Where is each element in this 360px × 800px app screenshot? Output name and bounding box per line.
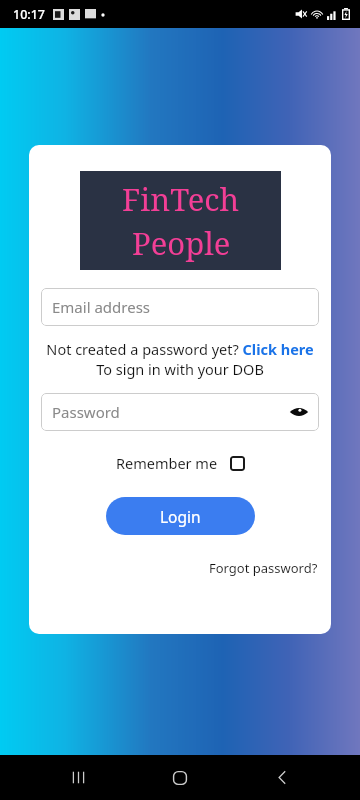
staticText: Not created a password yet? Click here T…	[37, 339, 323, 380]
staticText: FinTech	[122, 178, 240, 220]
staticText: Email address	[52, 297, 151, 317]
staticText: Login	[160, 506, 201, 527]
button[interactable]: Remember me	[112, 449, 249, 477]
staticText: Forgot password?	[209, 559, 318, 577]
button[interactable]: Not created a password yet? Click here T…	[37, 339, 323, 380]
button[interactable]: Home	[156, 755, 204, 800]
staticText: People	[132, 222, 231, 264]
button[interactable]: Back	[258, 755, 306, 800]
staticText: 10:17	[13, 6, 46, 23]
button[interactable]: Recents	[54, 755, 102, 800]
staticText: Remember me	[116, 453, 218, 473]
staticText: FinTech	[122, 178, 240, 220]
button[interactable]: Login	[106, 497, 255, 535]
button[interactable]: Email address	[41, 288, 319, 326]
button[interactable]: Show password	[288, 401, 310, 423]
button[interactable]: Password	[41, 393, 319, 431]
staticText: People	[132, 222, 231, 264]
staticText: Password	[52, 402, 120, 422]
button[interactable]: Forgot password?	[207, 557, 320, 579]
